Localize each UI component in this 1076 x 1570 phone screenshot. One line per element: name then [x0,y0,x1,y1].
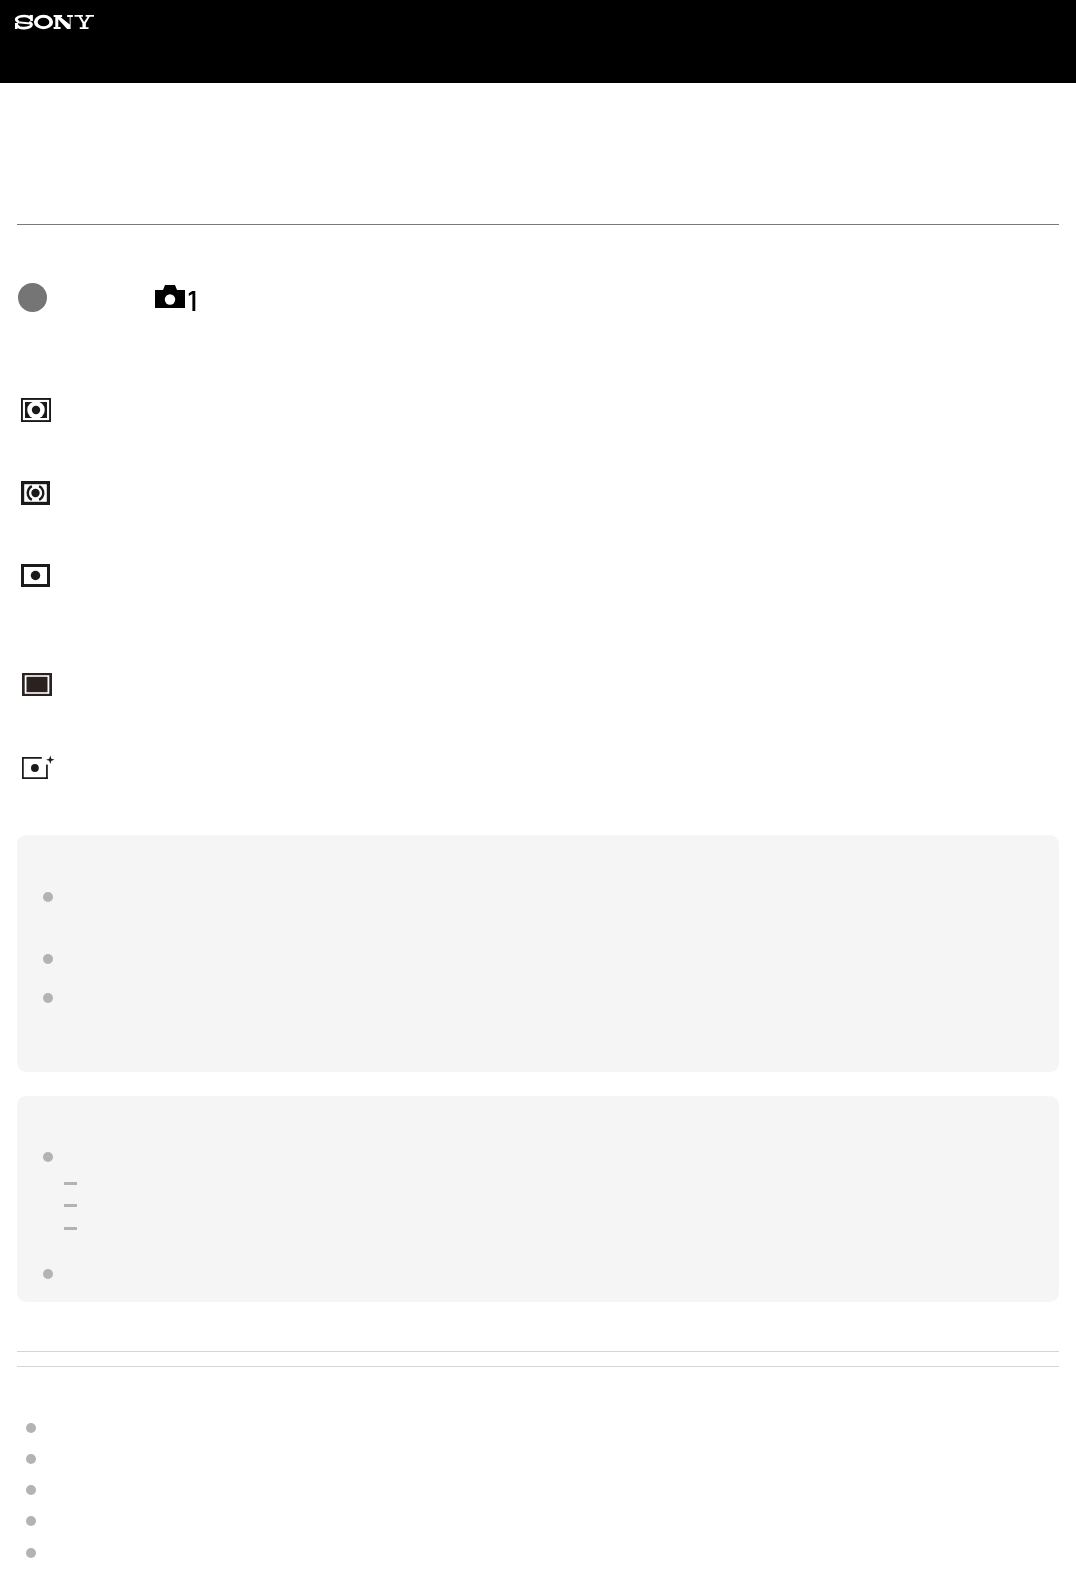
button[interactable]: SONY [15,15,94,29]
button[interactable]: Related topic 1 [17,1415,1059,1441]
button[interactable]: Highlight metering [18,751,1056,785]
button[interactable]: Mode dial [18,283,47,312]
button[interactable]: Spot metering [17,558,1055,593]
button[interactable]: Related topic 5 [17,1540,1059,1566]
button[interactable]: Entire screen average metering [18,667,1056,702]
button[interactable]: Related topic 3 [17,1477,1059,1503]
button[interactable]: Related topic 2 [17,1446,1059,1472]
button[interactable]: Center-weighted metering [17,475,1055,511]
button[interactable]: Multi metering [17,392,1055,428]
button[interactable]: Related topic 4 [17,1508,1059,1534]
button[interactable]: Still image shooting mode 1 [153,283,197,312]
